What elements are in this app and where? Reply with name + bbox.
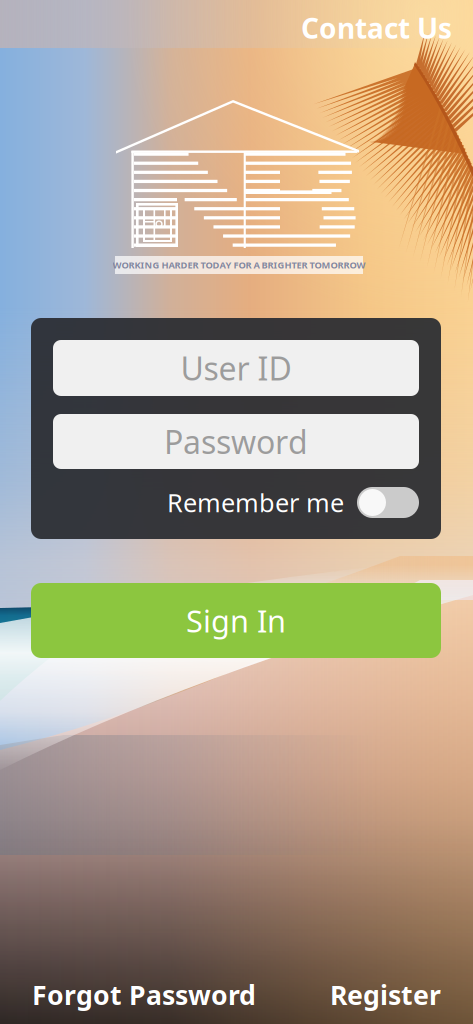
- button[interactable]: Remember me: [53, 487, 419, 518]
- staticText: Password: [164, 420, 308, 463]
- staticText: Forgot Password: [32, 977, 256, 1012]
- button[interactable]: Register: [330, 977, 441, 1012]
- staticText: Remember me: [167, 486, 344, 519]
- staticText: User ID: [180, 347, 291, 389]
- button[interactable]: Contact Us: [289, 1, 464, 55]
- staticText: Sign In: [186, 600, 286, 641]
- staticText: WORKING HARDER TODAY FOR A BRIGHTER TOMO…: [112, 259, 365, 271]
- staticText: Register: [330, 977, 441, 1012]
- button[interactable]: Forgot Password: [32, 977, 256, 1012]
- staticText: Contact Us: [301, 9, 452, 47]
- button[interactable]: Sign In: [31, 583, 441, 658]
